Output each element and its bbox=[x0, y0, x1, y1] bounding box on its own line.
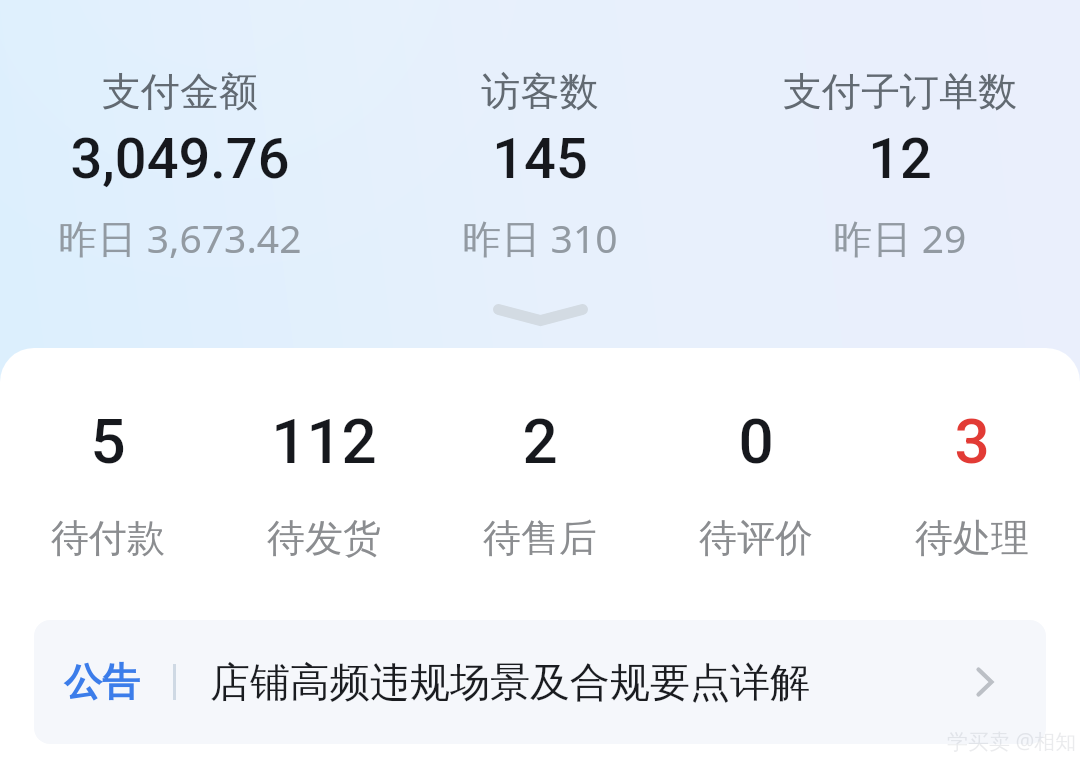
staticText: 0 bbox=[738, 405, 774, 478]
staticText: 昨日 3,673.42 bbox=[0, 211, 360, 264]
staticText: 3 bbox=[954, 405, 990, 478]
button[interactable]: 2 bbox=[432, 405, 648, 562]
staticText: 待评价 bbox=[699, 514, 813, 562]
button[interactable]: 公告 bbox=[34, 620, 1046, 744]
staticText: 待售后 bbox=[483, 514, 597, 562]
staticText: 待处理 bbox=[915, 514, 1029, 562]
other: 查看详情 bbox=[965, 660, 1005, 704]
staticText: 2 bbox=[522, 405, 558, 478]
staticText: 112 bbox=[271, 405, 377, 478]
button[interactable]: 112 bbox=[216, 405, 432, 562]
staticText: 昨日 29 bbox=[720, 211, 1080, 264]
staticText: 店铺高频违规场景及合规要点详解 bbox=[210, 657, 965, 707]
staticText: 12 bbox=[720, 126, 1080, 192]
staticText: 访客数 bbox=[360, 67, 720, 116]
button[interactable]: 0 bbox=[648, 405, 864, 562]
staticText: 5 bbox=[90, 405, 126, 478]
staticText: 待发货 bbox=[267, 514, 381, 562]
staticText: 公告 bbox=[64, 658, 140, 706]
button[interactable]: 3 bbox=[864, 405, 1080, 562]
staticText: 支付子订单数 bbox=[720, 67, 1080, 116]
staticText: 学买卖 @相知 bbox=[947, 727, 1077, 756]
staticText: 3,049.76 bbox=[0, 126, 360, 192]
button[interactable]: 收起 bbox=[0, 290, 1080, 338]
staticText: 145 bbox=[360, 126, 720, 192]
button[interactable]: 5 bbox=[0, 405, 216, 562]
staticText: 昨日 310 bbox=[360, 211, 720, 264]
staticText: 待付款 bbox=[51, 514, 165, 562]
staticText: 支付金额 bbox=[0, 67, 360, 116]
